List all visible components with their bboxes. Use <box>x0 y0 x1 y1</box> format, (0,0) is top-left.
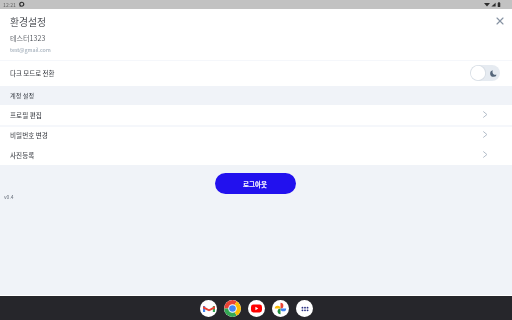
button[interactable]: 다크 모드로 전환 <box>0 61 512 86</box>
staticText: 환경설정 <box>10 15 47 29</box>
button[interactable]: Chrome <box>224 300 241 317</box>
button[interactable]: 사진등록 <box>0 145 512 165</box>
staticText: v0.4 <box>4 193 14 200</box>
button[interactable]: All apps <box>296 300 313 317</box>
staticText: 프로필 편집 <box>10 110 42 120</box>
button[interactable]: 비밀번호 변경 <box>0 125 512 145</box>
button[interactable]: Close <box>492 13 508 29</box>
staticText: 다크 모드로 전환 <box>10 69 55 78</box>
button[interactable]: YouTube <box>248 300 265 317</box>
staticText: 계정 설정 <box>10 91 35 100</box>
staticText: 비밀번호 변경 <box>10 130 48 140</box>
button[interactable]: Gmail <box>200 300 217 317</box>
staticText: 테스터1323 <box>10 33 46 43</box>
button[interactable]: 프로필 편집 <box>0 105 512 125</box>
button[interactable]: Toggle dark mode <box>470 65 500 81</box>
staticText: test@gmail.com <box>10 46 51 54</box>
staticText: 사진등록 <box>10 150 35 160</box>
staticText: 12:21 <box>3 1 16 9</box>
staticText: 로그아웃 <box>243 179 268 188</box>
button[interactable]: 로그아웃 <box>215 173 296 194</box>
button[interactable]: Google Photos <box>272 300 289 317</box>
